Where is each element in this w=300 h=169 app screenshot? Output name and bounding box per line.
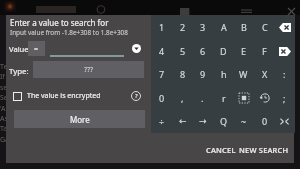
staticText: 2 [180, 21, 186, 33]
other: Forward delete [279, 47, 291, 56]
staticText: r [222, 92, 226, 104]
staticText: E [241, 45, 247, 57]
button[interactable]: ; [274, 86, 295, 110]
button[interactable]: C [254, 15, 275, 39]
staticText: As [0, 114, 8, 124]
staticText: se [0, 83, 8, 93]
staticText: D [220, 45, 227, 57]
staticText: 'A [0, 104, 6, 114]
staticText: h [221, 68, 227, 80]
staticText: . [201, 92, 204, 104]
button[interactable]: 2 [172, 15, 193, 39]
button[interactable]: More [14, 110, 145, 128]
staticText: Ta [0, 124, 8, 134]
staticText: ÷ [159, 115, 165, 127]
button[interactable]: Hide keyboard [274, 109, 295, 133]
button[interactable]: Backspace [274, 15, 295, 39]
button[interactable]: 5 [172, 39, 193, 63]
button[interactable]: h [213, 62, 234, 86]
button[interactable]: ← [172, 109, 193, 133]
button[interactable]: D [213, 39, 234, 63]
button[interactable]: Choose comparison operator [132, 44, 141, 53]
button[interactable]: NEW SEARCH [238, 142, 290, 158]
staticText: ~ [241, 115, 247, 127]
staticText: F [262, 45, 267, 57]
button[interactable]: , [172, 86, 193, 110]
button[interactable]: ??? [33, 61, 144, 78]
staticText: 9 [200, 68, 206, 80]
button[interactable]: 7 [151, 62, 172, 86]
staticText: Q [220, 115, 228, 127]
staticText: B [241, 21, 247, 33]
button[interactable]: Help [130, 90, 142, 102]
button[interactable]: : [274, 62, 295, 86]
staticText: NEW SEARCH [239, 145, 289, 155]
button[interactable]: 9 [192, 62, 213, 86]
staticText: 0 [159, 92, 165, 104]
other: Select all [239, 93, 249, 103]
button[interactable]: 6 [192, 39, 213, 63]
staticText: ← [179, 116, 187, 126]
button[interactable]: 1 [151, 15, 172, 39]
staticText: 4 [159, 45, 165, 57]
button[interactable]: E [233, 39, 254, 63]
button[interactable]: 0 [254, 109, 275, 133]
button[interactable]: 0 [151, 86, 172, 110]
staticText: , [181, 92, 184, 104]
staticText: = [34, 44, 39, 54]
staticText: If [0, 72, 5, 82]
button[interactable]: History [254, 86, 275, 110]
staticText: 5 [180, 45, 186, 57]
staticText: 1 [159, 21, 165, 33]
staticText: Enter a value to search for [10, 17, 109, 28]
button[interactable]: 8 [172, 62, 193, 86]
staticText: W [239, 68, 248, 80]
staticText: 3 [200, 21, 206, 33]
staticText: Input value from -1.8e+308 to 1.8e+308 [10, 28, 128, 37]
other: Hide keyboard [280, 118, 289, 125]
staticText: ??? [84, 65, 94, 75]
staticText: Te [0, 62, 8, 72]
other: Backspace [279, 23, 291, 32]
staticText: 6 [200, 45, 206, 57]
staticText: The value is encrypted [27, 91, 101, 101]
staticText: Ga [0, 135, 10, 145]
button[interactable]: r [213, 86, 234, 110]
staticText: Type: [9, 66, 29, 77]
button[interactable]: 4 [151, 39, 172, 63]
staticText: More [70, 114, 90, 125]
staticText: 8 [180, 68, 186, 80]
staticText: Value [9, 44, 29, 54]
staticText: A [221, 21, 227, 33]
button[interactable]: X [254, 62, 275, 86]
button[interactable]: CANCEL [205, 142, 237, 158]
button[interactable]: → [192, 109, 213, 133]
staticText: ; [283, 92, 286, 104]
button[interactable]: = [28, 41, 45, 56]
button[interactable]: ÷ [151, 109, 172, 133]
staticText: CANCEL [206, 145, 236, 155]
button[interactable]: Forward delete [274, 39, 295, 63]
button[interactable]: A [213, 15, 234, 39]
button[interactable]: Q [213, 109, 234, 133]
staticText: → [199, 116, 207, 126]
staticText: 7 [159, 68, 165, 80]
button[interactable]: 3 [192, 15, 213, 39]
staticText: : [283, 68, 286, 80]
staticText: C [262, 21, 268, 33]
other: History [260, 93, 270, 103]
button[interactable]: The value is encrypted [13, 88, 101, 104]
button[interactable]: W [233, 62, 254, 86]
button[interactable] [50, 41, 124, 58]
button[interactable]: . [192, 86, 213, 110]
button[interactable]: Select all [233, 86, 254, 110]
button[interactable]: F [254, 39, 275, 63]
staticText: X [262, 68, 268, 80]
staticText: 0 [262, 115, 268, 127]
button[interactable]: ~ [233, 109, 254, 133]
staticText: ? [135, 92, 138, 100]
button[interactable]: B [233, 15, 254, 39]
staticText: Se [0, 93, 8, 103]
